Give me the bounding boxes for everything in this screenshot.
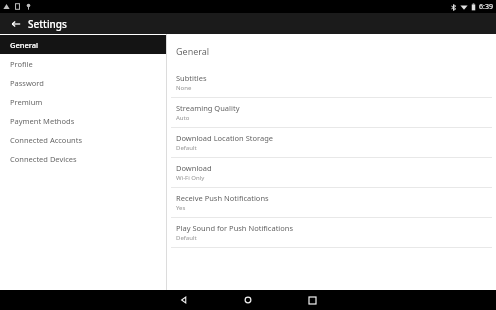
button[interactable]: Home bbox=[228, 290, 268, 310]
staticText: Connected Devices bbox=[10, 154, 77, 164]
staticText: Default bbox=[176, 234, 197, 242]
staticText: Settings bbox=[28, 17, 67, 31]
staticText: Auto bbox=[176, 114, 190, 122]
staticText: Password bbox=[10, 78, 44, 88]
staticText: None bbox=[176, 84, 192, 92]
button[interactable]: General bbox=[0, 35, 166, 54]
button[interactable]: Profile bbox=[0, 54, 166, 73]
button[interactable]: Payment Methods bbox=[0, 111, 166, 130]
button[interactable]: Connected Accounts bbox=[0, 130, 166, 149]
staticText: Yes bbox=[176, 204, 186, 212]
staticText: Streaming Quality bbox=[176, 103, 240, 113]
button[interactable]: Password bbox=[0, 73, 166, 92]
staticText: Subtitles bbox=[176, 73, 207, 83]
button[interactable]: Back bbox=[164, 290, 204, 310]
staticText: Premium bbox=[10, 97, 43, 107]
staticText: Download bbox=[176, 163, 212, 173]
button[interactable]: Play Sound for Push Notifications bbox=[167, 218, 496, 247]
button[interactable]: Connected Devices bbox=[0, 149, 166, 168]
staticText: General bbox=[10, 40, 39, 50]
button[interactable]: Streaming Quality bbox=[167, 98, 496, 127]
staticText: General bbox=[176, 45, 210, 57]
button[interactable]: Receive Push Notifications bbox=[167, 188, 496, 217]
button[interactable]: Subtitles bbox=[167, 68, 496, 97]
staticText: Default bbox=[176, 144, 197, 152]
button[interactable]: Recent apps bbox=[292, 290, 332, 310]
staticText: Payment Methods bbox=[10, 116, 75, 126]
staticText: Profile bbox=[10, 59, 33, 69]
staticText: Play Sound for Push Notifications bbox=[176, 223, 294, 233]
staticText: Download Location Storage bbox=[176, 133, 274, 143]
staticText: Wi-Fi Only bbox=[176, 174, 205, 182]
button[interactable]: Back bbox=[6, 14, 26, 34]
button[interactable]: Download Location Storage bbox=[167, 128, 496, 157]
button[interactable]: Premium bbox=[0, 92, 166, 111]
staticText: Receive Push Notifications bbox=[176, 193, 269, 203]
staticText: 6:39 bbox=[479, 2, 493, 12]
button[interactable]: Download bbox=[167, 158, 496, 187]
staticText: Connected Accounts bbox=[10, 135, 82, 145]
